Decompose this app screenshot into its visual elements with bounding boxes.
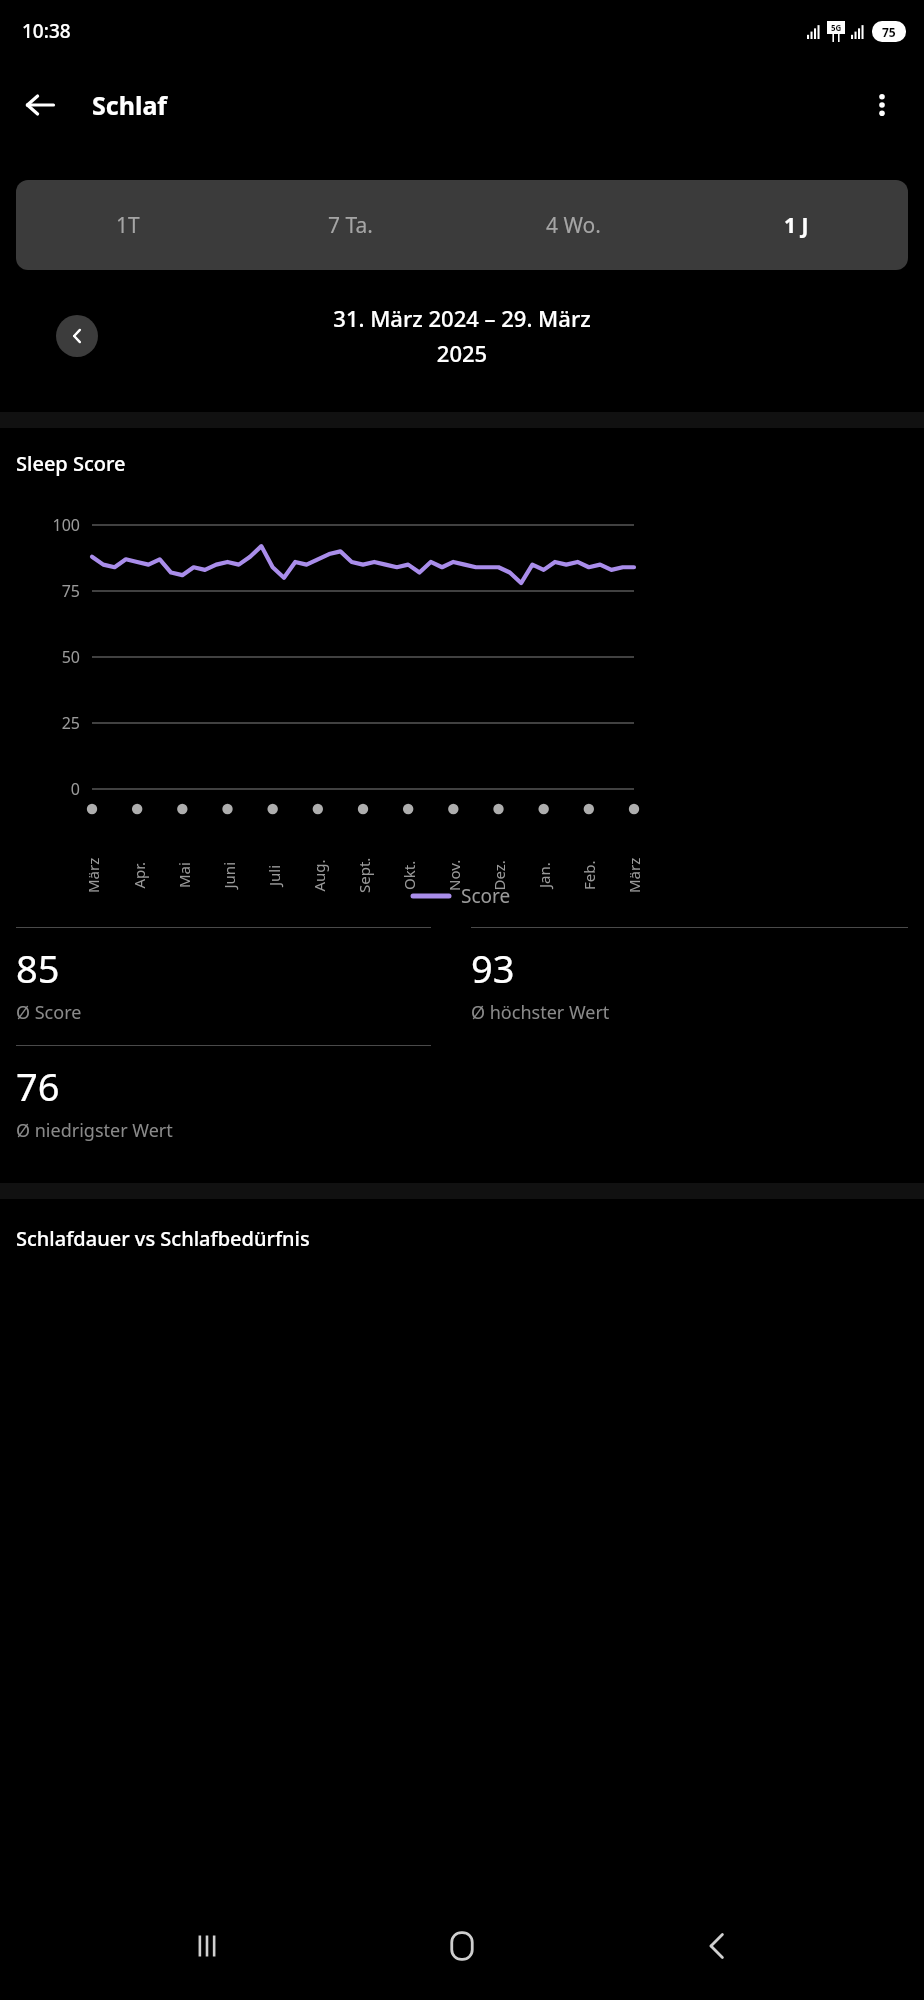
button[interactable]: 93 (471, 927, 908, 1045)
button[interactable]: 85 (16, 927, 431, 1045)
staticText: Nov. (444, 859, 464, 891)
button[interactable]: 1 J (685, 180, 908, 270)
staticText: 100 (0, 514, 80, 536)
staticText: Schlafdauer vs Schlafbedürfnis (16, 1225, 310, 1252)
staticText: Ø höchster Wert (471, 1000, 610, 1025)
staticText: 4 Wo. (546, 211, 601, 240)
staticText: Juni (218, 861, 238, 888)
button[interactable]: 76 (16, 1045, 431, 1163)
button[interactable]: Letzte Apps (159, 1898, 255, 1994)
staticText: 93 (471, 942, 515, 994)
staticText: Ø niedrigster Wert (16, 1118, 173, 1143)
staticText: 0 (0, 778, 80, 800)
staticText: Ø Score (16, 1000, 82, 1025)
staticText: 75 (0, 580, 80, 602)
staticText: 5G (831, 22, 842, 33)
button[interactable]: 1T (16, 180, 239, 270)
staticText: 1T (116, 211, 140, 240)
staticText: Jan. (534, 862, 554, 888)
button[interactable]: 4 Wo. (462, 180, 685, 270)
staticText: Apr. (128, 861, 148, 888)
staticText: 75 (882, 24, 896, 40)
staticText: 1 J (784, 211, 809, 240)
button[interactable]: 7 Ta. (239, 180, 462, 270)
staticText: Score (461, 883, 511, 909)
staticText: Feb. (579, 860, 599, 890)
button[interactable]: Zurück (669, 1898, 765, 1994)
staticText: Juli (264, 864, 284, 886)
staticText: Schlaf (92, 88, 168, 122)
staticText: Sept. (354, 857, 374, 893)
staticText: 7 Ta. (328, 211, 373, 240)
staticText: 31. März 2024 – 29. März 2025 (333, 303, 591, 369)
staticText: 25 (0, 712, 80, 734)
staticText: März (624, 857, 644, 893)
staticText: Aug. (308, 858, 328, 891)
button[interactable]: Vorheriger Zeitraum (56, 315, 98, 357)
button[interactable]: Weitere Optionen (856, 79, 908, 131)
staticText: März (83, 857, 103, 893)
staticText: Dez. (488, 859, 508, 890)
staticText: Sleep Score (16, 450, 126, 477)
button[interactable]: Startbildschirm (414, 1898, 510, 1994)
staticText: Mai (174, 862, 194, 888)
staticText: 10:38 (22, 18, 71, 44)
staticText: 50 (0, 646, 80, 668)
button[interactable]: Zurück (14, 79, 66, 131)
staticText: Okt. (399, 860, 419, 890)
staticText: 76 (16, 1060, 60, 1112)
staticText: 85 (16, 942, 60, 994)
